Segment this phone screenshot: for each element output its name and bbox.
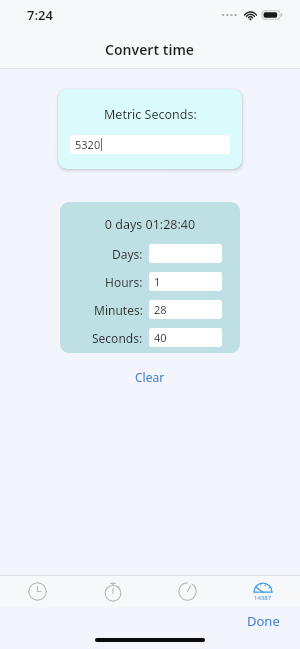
button[interactable]: Timer (150, 576, 225, 607)
button[interactable]: Metric time (225, 576, 300, 607)
staticText: Metric Seconds: (104, 106, 197, 123)
staticText: Convert time (105, 40, 195, 59)
staticText: Hours: (105, 274, 143, 290)
button[interactable] (149, 244, 222, 263)
staticText: 14387 (254, 594, 272, 602)
staticText: Done (247, 612, 280, 630)
staticText: Clear (135, 369, 165, 385)
staticText: 1 (154, 274, 161, 289)
button[interactable]: 5320 (70, 135, 230, 154)
staticText: Minutes: (94, 302, 143, 318)
staticText: 0 days 01:28:40 (60, 216, 240, 233)
staticText: Days: (112, 246, 143, 262)
staticText: 5320 (75, 137, 101, 152)
staticText: 40 (154, 330, 167, 345)
button[interactable]: Stopwatch (75, 576, 150, 607)
staticText: 28 (154, 302, 167, 317)
button[interactable]: World clock (0, 576, 75, 607)
staticText: 7:24 (27, 6, 53, 24)
button[interactable]: Done (241, 609, 286, 633)
button[interactable]: 1 (149, 272, 222, 291)
button[interactable]: 40 (149, 328, 222, 347)
staticText: Seconds: (92, 330, 143, 346)
button[interactable]: 28 (149, 300, 222, 319)
button[interactable]: Clear (125, 366, 175, 388)
